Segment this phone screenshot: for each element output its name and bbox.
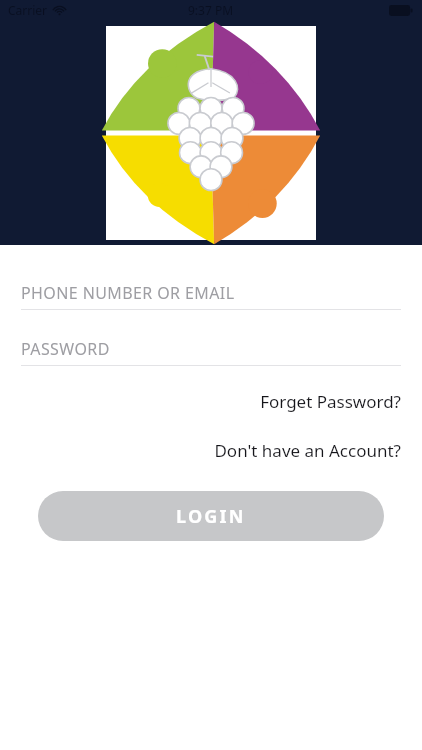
button[interactable]: PHONE NUMBER OR EMAIL <box>0 277 422 310</box>
staticText: PHONE NUMBER OR EMAIL <box>21 282 235 304</box>
staticText: Forget Password? <box>260 390 401 413</box>
staticText: Don't have an Account? <box>214 439 401 462</box>
button[interactable]: Don't have an Account? <box>0 439 422 462</box>
button[interactable]: Forget Password? <box>0 390 422 413</box>
button[interactable]: PASSWORD <box>0 333 422 366</box>
button[interactable]: LOGIN <box>38 491 384 541</box>
staticText: 9:37 PM <box>188 2 234 18</box>
staticText: Carrier <box>8 2 48 18</box>
staticText: LOGIN <box>176 504 246 529</box>
staticText: PASSWORD <box>21 338 110 360</box>
